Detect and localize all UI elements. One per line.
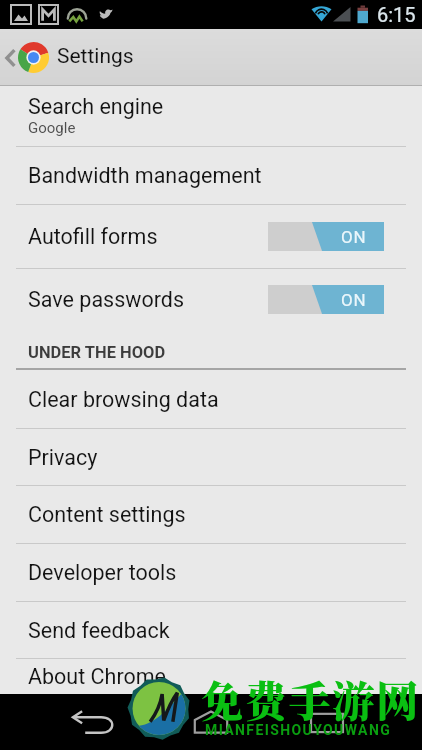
button[interactable]: Navigate up xyxy=(0,29,422,86)
staticText: Clear browsing data xyxy=(28,387,219,412)
button[interactable]: About Chrome xyxy=(0,659,422,694)
staticText: ON xyxy=(341,290,367,310)
button[interactable]: Back xyxy=(48,694,140,750)
button[interactable]: Privacy xyxy=(0,429,422,485)
button[interactable]: Save passwords xyxy=(0,269,422,330)
staticText: Developer tools xyxy=(28,560,177,585)
staticText: MIANFEISHOUYOUWANG xyxy=(205,722,392,738)
staticText: UNDER THE HOOD xyxy=(28,343,166,362)
button[interactable]: Developer tools xyxy=(0,544,422,601)
staticText: Bandwidth management xyxy=(28,163,262,188)
button[interactable]: Recent apps xyxy=(281,694,373,750)
button[interactable]: Content settings xyxy=(0,486,422,543)
button[interactable]: Send feedback xyxy=(0,602,422,658)
staticText: Send feedback xyxy=(28,618,170,643)
button[interactable]: Home xyxy=(165,694,257,750)
staticText: 免费手游网 xyxy=(201,669,421,729)
button[interactable]: Bandwidth management xyxy=(0,147,422,204)
staticText: Google xyxy=(28,119,76,137)
button[interactable]: Search engine xyxy=(0,86,422,146)
staticText: ON xyxy=(341,227,367,247)
staticText: Privacy xyxy=(28,445,98,470)
staticText: Settings xyxy=(57,44,134,69)
button[interactable]: Autofill forms xyxy=(0,205,422,268)
staticText: About Chrome xyxy=(28,664,167,689)
button[interactable]: Clear browsing data xyxy=(0,370,422,428)
staticText: Search engine xyxy=(28,94,164,119)
staticText: Save passwords xyxy=(28,287,268,312)
staticText: Autofill forms xyxy=(28,224,268,249)
staticText: Content settings xyxy=(28,502,186,527)
staticText: 6:15 xyxy=(377,3,416,26)
